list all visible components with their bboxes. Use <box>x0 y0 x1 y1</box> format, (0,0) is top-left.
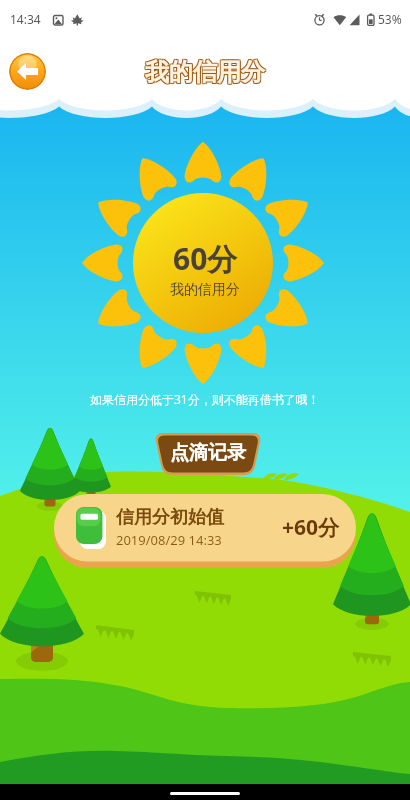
staticText: 信用分初始值 <box>116 506 224 529</box>
staticText: 我的信用分 <box>144 56 264 86</box>
staticText: 我的信用分 <box>145 56 265 86</box>
staticText: 我的信用分 <box>146 58 266 88</box>
staticText: 60分 <box>173 238 238 279</box>
staticText: 我的信用分 <box>145 58 265 88</box>
staticText: 如果信用分低于31分，则不能再借书了哦！ <box>90 391 320 407</box>
staticText: 我的信用分 <box>146 57 266 87</box>
staticText: 我的信用分 <box>145 57 265 87</box>
staticText: 我的信用分 <box>144 58 264 88</box>
staticText: 14:34 <box>10 11 41 27</box>
staticText: 点滴记录 <box>170 441 246 465</box>
staticText: 我的信用分 <box>170 281 240 299</box>
staticText: 我的信用分 <box>146 56 266 86</box>
staticText: 53% <box>378 11 402 27</box>
button[interactable]: 信用分初始值 <box>54 494 356 568</box>
button[interactable]: 点滴记录 <box>154 433 262 475</box>
staticText: 2019/08/29 14:33 <box>116 531 222 549</box>
staticText: +60分 <box>282 513 340 542</box>
button[interactable]: Back <box>9 53 46 90</box>
staticText: 我的信用分 <box>144 57 264 87</box>
